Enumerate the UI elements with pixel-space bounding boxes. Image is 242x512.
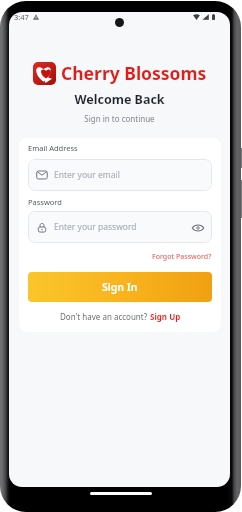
button[interactable]: Sign In — [28, 272, 212, 302]
staticText: Welcome Back — [9, 91, 230, 108]
staticText: Don't have an account? — [60, 311, 150, 322]
staticText: Email Address — [28, 143, 78, 153]
button[interactable]: Enter your email — [28, 159, 212, 191]
staticText: Sign In — [102, 280, 138, 294]
staticText: Enter your email — [54, 169, 120, 181]
button[interactable]: Sign Up — [150, 311, 181, 322]
staticText: Password — [28, 197, 62, 207]
button[interactable]: Show password — [191, 221, 204, 234]
staticText: Sign in to continue — [9, 113, 230, 124]
button[interactable]: Enter your password — [28, 211, 212, 243]
staticText: Enter your password — [54, 221, 137, 233]
button[interactable]: Forgot Password? — [152, 252, 212, 262]
staticText: Cherry Blossoms — [61, 61, 207, 85]
staticText: 3:47 — [14, 12, 29, 21]
